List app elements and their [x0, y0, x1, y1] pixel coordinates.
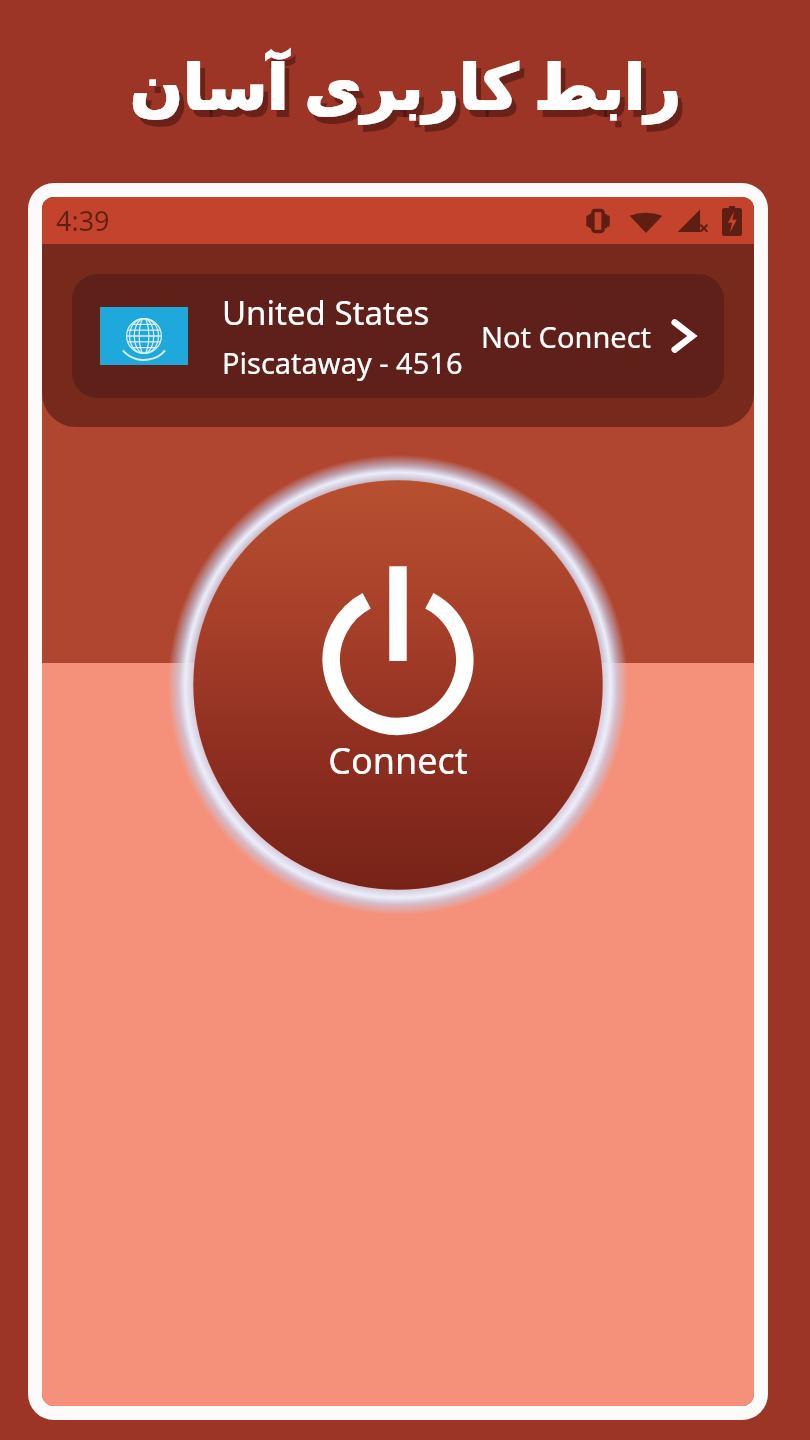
staticText: رابط کاربری آسان [130, 43, 681, 127]
button[interactable]: United States [72, 274, 724, 398]
staticText: United States [222, 290, 430, 335]
staticText: Connect [328, 736, 468, 785]
staticText: رابط کاربری آسان [135, 50, 686, 134]
staticText: Not Connect [481, 317, 652, 356]
staticText: 4:39 [56, 202, 110, 239]
staticText: Piscataway - 4516 [222, 343, 463, 382]
button[interactable]: Connect [168, 455, 628, 915]
